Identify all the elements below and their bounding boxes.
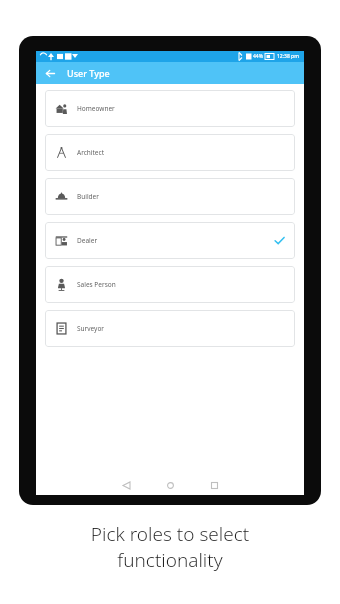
staticText: 12:38 pm [277,53,299,60]
button[interactable]: Builder [45,178,295,215]
button[interactable]: Back [41,64,59,82]
staticText: Surveyor [77,324,105,333]
staticText: Sales Person [77,280,116,289]
staticText: Dealer [77,236,98,245]
button[interactable]: Homeowner [45,90,295,127]
staticText: User Type [67,67,110,79]
staticText: 44% [253,53,263,60]
button[interactable]: Architect [45,134,295,171]
button[interactable]: Dealer [45,222,295,259]
button[interactable]: Recents [199,476,229,495]
button[interactable]: Home [155,476,185,495]
button[interactable]: Surveyor [45,310,295,347]
staticText: Pick roles to select functionality [12,521,328,573]
staticText: Homeowner [77,104,115,113]
button[interactable]: Sales Person [45,266,295,303]
staticText: Builder [77,192,99,201]
staticText: Architect [77,148,105,157]
button[interactable]: Back [111,476,141,495]
